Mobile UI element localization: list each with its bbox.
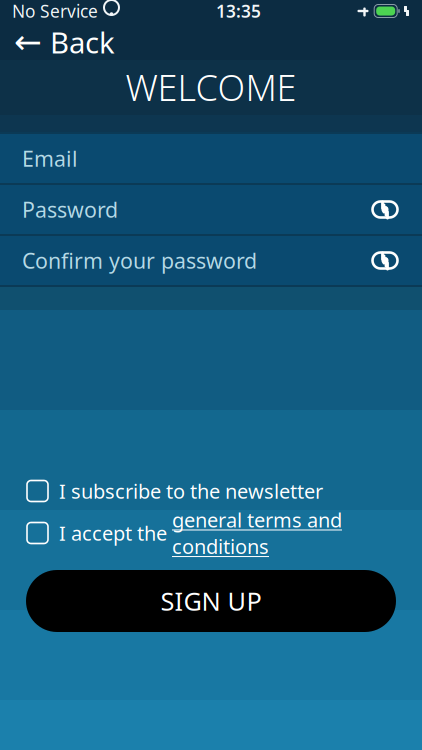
button[interactable]: I accept the	[0, 514, 422, 552]
button[interactable]: Confirm your password	[0, 236, 422, 285]
staticText: Password	[22, 195, 118, 224]
staticText: SIGN UP	[160, 584, 261, 618]
staticText: general terms and conditions	[172, 506, 342, 559]
button[interactable]: Email	[0, 134, 422, 183]
button[interactable]: I subscribe to the newsletter	[0, 472, 422, 510]
staticText: I accept the	[59, 520, 172, 546]
button[interactable]: Password	[0, 185, 422, 234]
button[interactable]: SIGN UP	[26, 570, 396, 632]
staticText: ←	[14, 23, 42, 61]
staticText: Email	[22, 144, 78, 173]
staticText: No Service	[12, 0, 98, 22]
staticText: Confirm your password	[22, 246, 257, 275]
staticText: WELCOME	[125, 63, 296, 111]
staticText: 13:35	[216, 0, 261, 22]
staticText: I subscribe to the newsletter	[59, 478, 323, 504]
button[interactable]: ←	[0, 22, 129, 62]
staticText: Back	[50, 22, 115, 61]
